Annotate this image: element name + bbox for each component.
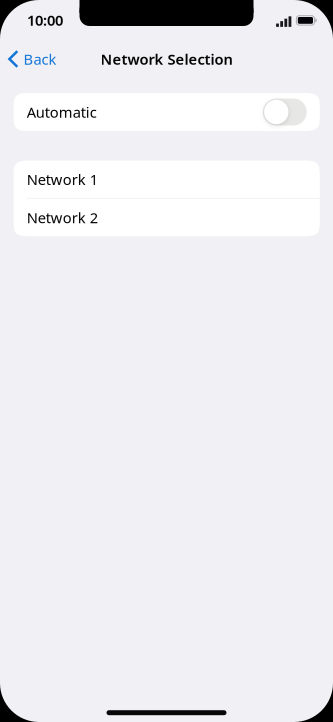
staticText: Network 2 <box>27 208 98 227</box>
button[interactable]: Network 2 <box>14 199 320 236</box>
button[interactable]: Network 1 <box>14 160 320 198</box>
button[interactable]: Automatic <box>14 93 320 131</box>
staticText: Automatic <box>27 102 97 122</box>
staticText: Network 1 <box>27 169 98 189</box>
staticText: 10:00 <box>27 10 63 30</box>
staticText: Back <box>23 49 56 69</box>
button[interactable]: Back <box>0 40 64 78</box>
staticText: Network Selection <box>100 49 232 69</box>
